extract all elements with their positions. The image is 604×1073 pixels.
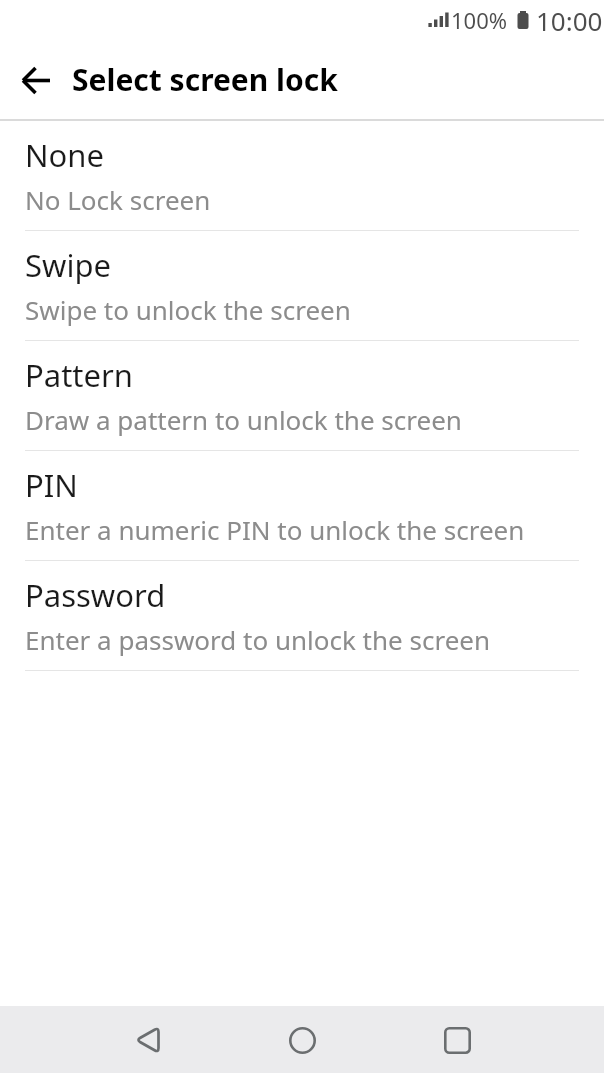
staticText: PIN: [25, 464, 78, 506]
staticText: 100%: [451, 5, 508, 35]
staticText: Swipe to unlock the screen: [25, 292, 351, 327]
staticText: Draw a pattern to unlock the screen: [25, 402, 462, 437]
button[interactable]: None: [0, 121, 604, 231]
button[interactable]: PIN: [0, 451, 604, 561]
button[interactable]: [433, 1016, 481, 1064]
staticText: Swipe: [25, 244, 111, 286]
button[interactable]: [123, 1016, 171, 1064]
staticText: Pattern: [25, 354, 133, 396]
staticText: Enter a password to unlock the screen: [25, 622, 491, 657]
button[interactable]: Pattern: [0, 341, 604, 451]
staticText: Password: [25, 574, 166, 616]
staticText: Enter a numeric PIN to unlock the screen: [25, 512, 525, 547]
staticText: No Lock screen: [25, 182, 211, 217]
staticText: Select screen lock: [72, 59, 338, 100]
button[interactable]: Password: [0, 561, 604, 671]
staticText: None: [25, 134, 104, 176]
staticText: 10:00: [536, 3, 603, 38]
button[interactable]: [0, 44, 72, 116]
button[interactable]: [278, 1016, 326, 1064]
button[interactable]: Swipe: [0, 231, 604, 341]
